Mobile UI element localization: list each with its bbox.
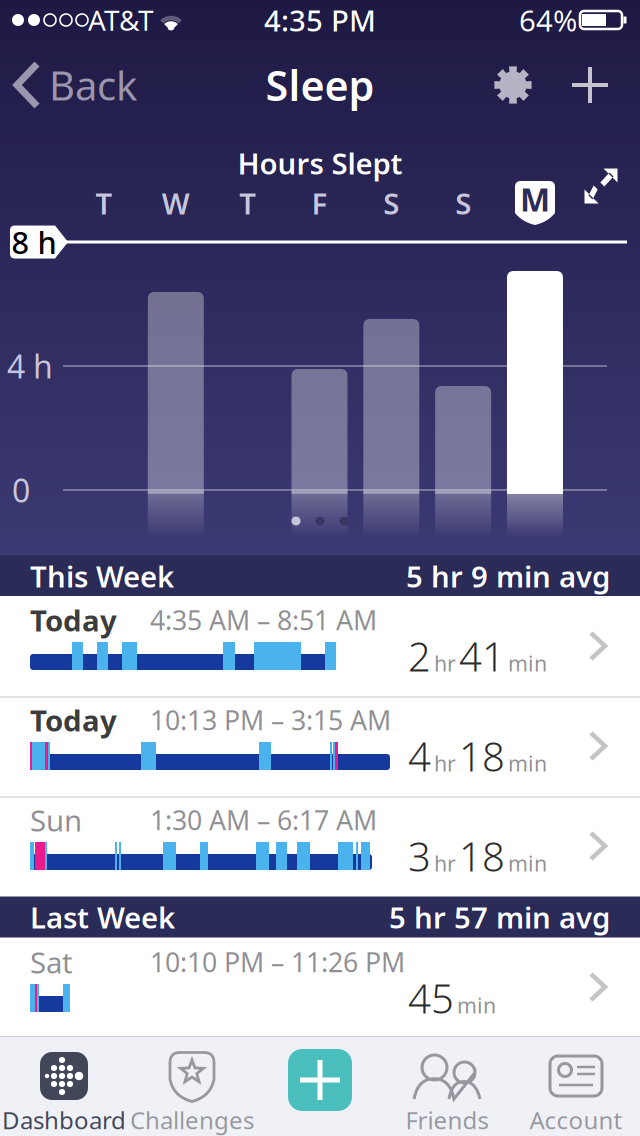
staticText: Hours Slept xyxy=(237,143,402,182)
staticText: 2 xyxy=(408,629,431,682)
button[interactable]: Sat xyxy=(0,938,640,1036)
button[interactable]: Account xyxy=(512,1036,640,1136)
button[interactable]: Page 2 xyxy=(315,516,324,525)
staticText: 5 hr 9 min avg xyxy=(406,556,610,595)
button[interactable]: Today xyxy=(0,696,640,796)
staticText: min xyxy=(508,649,547,677)
staticText: 5 hr 57 min avg xyxy=(389,897,610,936)
staticText: min xyxy=(508,849,547,877)
staticText: T xyxy=(95,183,112,222)
button[interactable]: Add xyxy=(572,67,608,103)
staticText: 64% xyxy=(519,0,577,39)
button[interactable]: Settings xyxy=(494,66,532,104)
staticText: 4:35 AM – 8:51 AM xyxy=(150,602,377,638)
staticText: Today xyxy=(30,700,117,739)
staticText: 3 xyxy=(408,829,431,882)
staticText: Sat xyxy=(30,942,73,981)
staticText: Last Week xyxy=(30,897,175,936)
button[interactable]: Today xyxy=(0,596,640,696)
button[interactable]: Back xyxy=(17,61,137,109)
staticText: 10:10 PM – 11:26 PM xyxy=(150,944,405,980)
staticText: Today xyxy=(30,600,117,639)
staticText: Friends xyxy=(405,1104,488,1136)
staticText: 18 xyxy=(459,829,505,882)
staticText: 10:13 PM – 3:15 AM xyxy=(150,702,391,738)
staticText: F xyxy=(311,183,327,222)
button[interactable]: Page 3 xyxy=(339,516,348,525)
staticText: 8 h xyxy=(11,222,56,262)
staticText: M xyxy=(520,178,550,220)
staticText: 18 xyxy=(459,729,505,782)
staticText: Dashboard xyxy=(2,1104,126,1136)
staticText: Sun xyxy=(30,800,82,839)
staticText: 0 xyxy=(12,469,30,511)
staticText: Account xyxy=(529,1104,622,1136)
staticText: 1:30 AM – 6:17 AM xyxy=(150,802,377,838)
button[interactable]: Log activity xyxy=(288,1049,352,1111)
button[interactable]: Sun xyxy=(0,796,640,896)
staticText: 4 h xyxy=(7,345,53,387)
staticText: Back xyxy=(49,58,137,111)
button[interactable]: Challenges xyxy=(128,1036,256,1136)
staticText: min xyxy=(457,991,496,1019)
button[interactable]: Expand chart xyxy=(584,168,617,203)
staticText: AT&T xyxy=(88,1,154,39)
button[interactable]: Friends xyxy=(383,1036,511,1136)
staticText: S xyxy=(455,183,471,222)
staticText: Challenges xyxy=(130,1104,254,1136)
staticText: 4 xyxy=(408,729,431,782)
staticText: hr xyxy=(434,649,456,677)
button[interactable]: Dashboard xyxy=(0,1036,128,1136)
staticText: 4:35 PM xyxy=(264,0,376,39)
staticText: min xyxy=(508,749,547,777)
staticText: hr xyxy=(434,749,456,777)
staticText: hr xyxy=(434,849,456,877)
staticText: Sleep xyxy=(265,58,374,112)
staticText: 45 xyxy=(408,971,454,1024)
staticText: This Week xyxy=(30,556,174,595)
staticText: 41 xyxy=(459,629,505,682)
staticText: S xyxy=(383,183,399,222)
staticText: T xyxy=(239,183,256,222)
staticText: W xyxy=(162,183,190,222)
